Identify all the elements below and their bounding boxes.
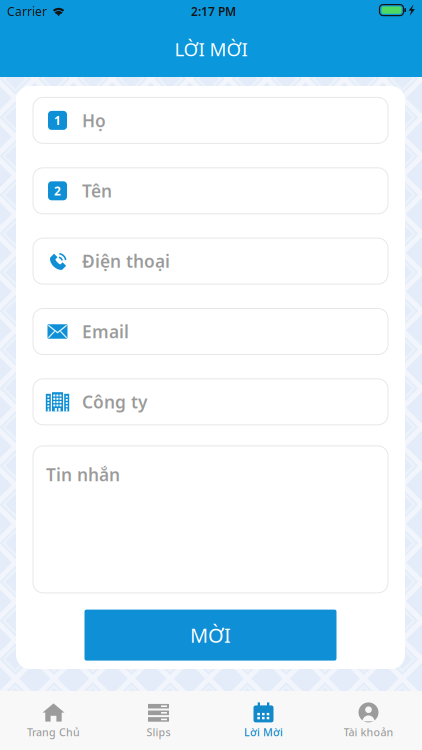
staticText: Công ty [82,390,147,413]
button[interactable]: Email [33,308,388,354]
staticText: Tài khoản [343,725,393,739]
button[interactable]: Tài khoản [316,691,421,749]
staticText: Trang Chủ [27,725,80,739]
button[interactable]: Slips [106,691,211,749]
staticText: 2 [54,183,61,199]
staticText: Slips [146,725,170,739]
button[interactable]: Trang Chủ [1,691,106,749]
button[interactable]: Lời Mời [211,691,316,749]
staticText: 2:17 PM [191,3,236,19]
staticText: Email [82,320,129,343]
staticText: Carrier [7,3,47,19]
staticText: 1 [54,112,61,128]
button[interactable]: Điện thoại [33,238,388,284]
staticText: Điện thoại [82,250,170,273]
staticText: MỜI [190,622,231,648]
button[interactable]: 2 [33,168,388,214]
staticText: Tin nhắn [46,463,120,486]
button[interactable]: Công ty [33,379,388,425]
button[interactable]: Tin nhắn [33,446,388,593]
button[interactable]: MỜI [84,610,336,661]
button[interactable]: 1 [33,97,388,143]
staticText: Họ [82,109,106,132]
staticText: LỜI MỜI [174,37,247,61]
staticText: Lời Mời [244,725,283,739]
staticText: Tên [82,179,112,202]
